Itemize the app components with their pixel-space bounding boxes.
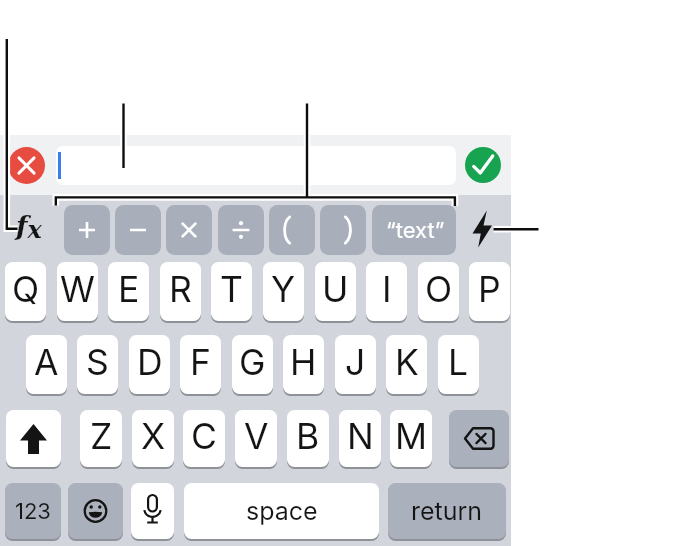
button[interactable]: Q (5, 262, 46, 321)
staticText: K (395, 341, 419, 384)
staticText: Y (271, 268, 296, 311)
button[interactable]: L (438, 335, 479, 394)
staticText: F (190, 341, 211, 384)
staticText: J (345, 341, 366, 384)
staticText: U (322, 268, 349, 311)
button[interactable]: E (108, 262, 149, 321)
button[interactable]: R (160, 262, 201, 321)
button[interactable] (461, 206, 505, 254)
staticText: L (448, 341, 469, 384)
button[interactable]: V (235, 410, 277, 467)
staticText: M (395, 415, 428, 458)
staticText: W (60, 268, 95, 311)
button[interactable]: H (283, 335, 324, 394)
staticText: T (220, 268, 243, 311)
button[interactable] (115, 205, 161, 255)
staticText: 123 (15, 498, 51, 525)
button[interactable] (166, 205, 212, 255)
button[interactable]: S (77, 335, 118, 394)
staticText: H (290, 341, 317, 384)
staticText: R (169, 268, 192, 311)
button[interactable]: “text” (372, 205, 456, 255)
button[interactable]: Z (80, 410, 122, 467)
button[interactable]: return (388, 483, 506, 539)
button[interactable] (218, 205, 264, 255)
button[interactable]: C (183, 410, 225, 467)
button[interactable]: N (339, 410, 381, 467)
button[interactable]: O (418, 262, 459, 321)
button[interactable]: W (57, 262, 98, 321)
staticText: D (137, 341, 163, 384)
button[interactable]: J (335, 335, 376, 394)
button[interactable] (320, 205, 366, 255)
staticText: fx (16, 210, 42, 244)
button[interactable]: I (366, 262, 407, 321)
button[interactable]: A (26, 335, 67, 394)
staticText: V (244, 415, 269, 458)
button[interactable]: X (132, 410, 174, 467)
button[interactable]: G (232, 335, 273, 394)
button[interactable] (56, 146, 456, 185)
staticText: P (478, 268, 501, 311)
button[interactable]: T (211, 262, 252, 321)
staticText: I (382, 268, 392, 311)
staticText: A (34, 341, 59, 384)
staticText: Q (12, 268, 40, 311)
button[interactable]: M (390, 410, 432, 467)
staticText: space (246, 496, 318, 526)
button[interactable]: D (129, 335, 170, 394)
staticText: N (347, 415, 374, 458)
button[interactable]: B (287, 410, 329, 467)
button[interactable] (64, 205, 110, 255)
button[interactable]: 123 (5, 483, 61, 539)
staticText: Z (90, 415, 113, 458)
button[interactable]: space (184, 483, 379, 539)
staticText: S (86, 341, 109, 384)
button[interactable] (465, 147, 501, 183)
button[interactable] (68, 483, 123, 539)
staticText: E (118, 268, 140, 311)
staticText: C (191, 415, 217, 458)
staticText: X (141, 415, 166, 458)
staticText: return (411, 496, 483, 526)
button[interactable] (6, 410, 61, 467)
staticText: “text” (386, 217, 445, 244)
staticText: B (296, 415, 320, 458)
button[interactable] (269, 205, 315, 255)
button[interactable] (131, 483, 174, 539)
button[interactable]: Y (263, 262, 304, 321)
button[interactable] (449, 410, 509, 467)
button[interactable]: F (180, 335, 221, 394)
button[interactable]: fx (8, 204, 50, 250)
button[interactable]: U (315, 262, 356, 321)
staticText: O (425, 268, 453, 311)
staticText: G (239, 341, 266, 384)
button[interactable] (8, 147, 45, 184)
button[interactable]: P (469, 262, 510, 321)
button[interactable]: K (386, 335, 427, 394)
